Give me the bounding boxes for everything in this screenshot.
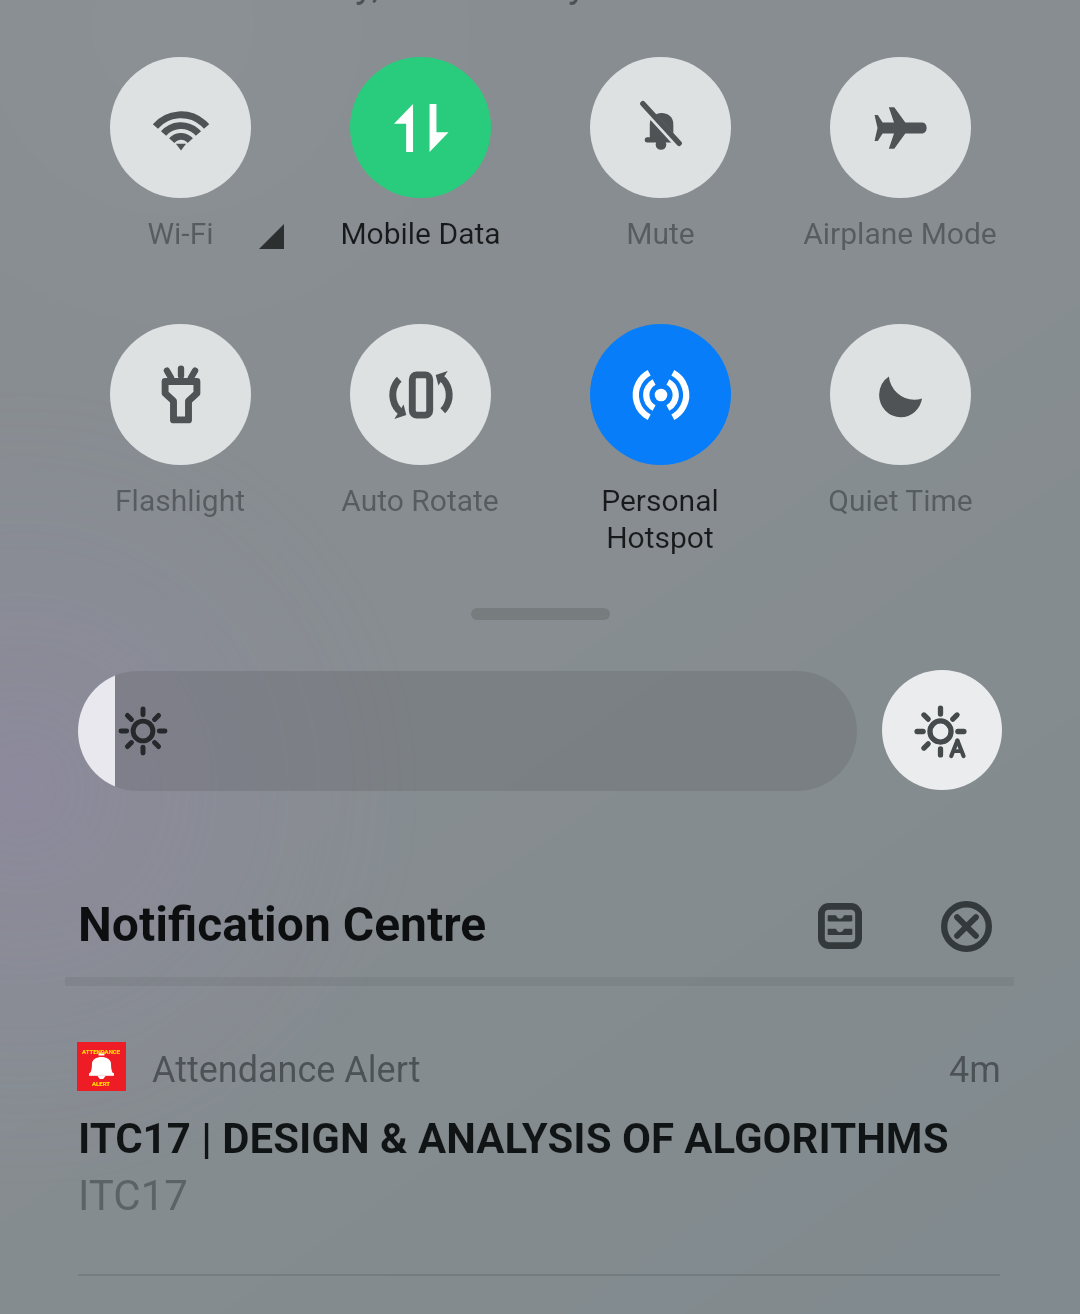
staticText: 4m [949,1049,1001,1091]
button[interactable]: Notification Centre [78,896,487,952]
button[interactable]: Clear all notifications [930,890,1002,962]
button[interactable]: Airplane Mode [780,57,1020,251]
staticText: Sunday, 12 January [243,0,587,7]
button[interactable]: Brightness [78,671,857,791]
button[interactable]: Quiet Time [780,324,1020,518]
button[interactable]: Flashlight [60,324,300,518]
staticText: Mobile Data [340,216,501,251]
button[interactable]: Automatic brightness [882,670,1002,790]
staticText: Wi-Fi [147,216,214,251]
button[interactable]: Notification history [804,890,876,962]
staticText: Attendance Alert [152,1049,421,1091]
staticText: Notification Centre [78,896,487,952]
button[interactable]: ATTENDANCE [66,1030,1014,1230]
staticText: Quiet Time [828,483,973,518]
staticText: Airplane Mode [803,216,997,251]
staticText: ALERT [92,1080,111,1087]
staticText: ITC17 | DESIGN & ANALYSIS OF ALGORITHMS [78,1114,949,1163]
staticText: Flashlight [115,483,245,518]
staticText: Auto Rotate [341,483,499,518]
button[interactable]: Mute [540,57,780,251]
button[interactable]: Wi-Fi [60,57,300,251]
staticText: ATTENDANCE [82,1048,121,1055]
button[interactable]: Personal Hotspot [540,324,780,556]
button[interactable]: Auto Rotate [300,324,540,518]
staticText: ITC17 [78,1171,188,1220]
staticText: Personal Hotspot [601,483,719,556]
button[interactable]: Wi-Fi settings [259,224,284,249]
button[interactable]: Mobile Data [300,57,540,251]
staticText: Mute [626,216,695,251]
